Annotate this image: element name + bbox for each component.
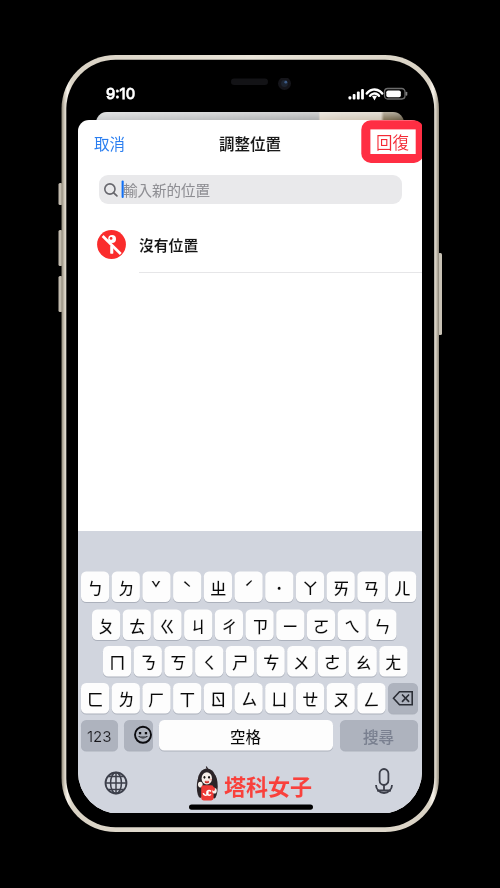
staticText: ㄠ [355, 650, 372, 674]
staticText: ㄋ [140, 650, 157, 674]
button[interactable]: 搜尋 [340, 720, 418, 751]
button[interactable]: ㄏ [142, 683, 170, 714]
button[interactable]: 回復 [370, 129, 415, 154]
staticText: ㄐ [190, 614, 207, 638]
button[interactable]: ㄦ [388, 572, 416, 603]
button[interactable]: ㄡ [327, 683, 355, 714]
staticText: ㄛ [313, 614, 330, 638]
staticText: 塔科女子 [224, 769, 313, 801]
button[interactable]: 空格 [159, 720, 333, 751]
button[interactable]: ㄔ [215, 610, 243, 641]
button[interactable]: ˋ [173, 572, 201, 603]
button[interactable]: ㄚ [296, 572, 324, 603]
button[interactable]: ㄈ [81, 683, 109, 714]
staticText: ㄧ [282, 614, 299, 638]
button[interactable]: ㄑ [195, 646, 223, 677]
staticText: ㄤ [385, 650, 402, 674]
staticText: ㄘ [263, 650, 280, 674]
staticText: ㄝ [302, 687, 319, 711]
button[interactable]: ㄌ [112, 683, 140, 714]
staticText: 取消 [94, 132, 125, 154]
staticText: ㄥ [363, 687, 380, 711]
button[interactable]: ㄒ [173, 683, 201, 714]
button[interactable]: ㄘ [257, 646, 285, 677]
button[interactable]: ㄟ [338, 610, 366, 641]
button[interactable]: ㄇ [103, 646, 131, 677]
staticText: ㄗ [252, 614, 269, 638]
button[interactable]: ㄖ [204, 683, 232, 714]
staticText: ㄅ [87, 576, 104, 600]
button[interactable]: ㄕ [226, 646, 254, 677]
staticText: ㄞ [333, 576, 350, 600]
button[interactable]: ㄆ [92, 610, 120, 641]
staticText: ㄩ [271, 687, 288, 711]
staticText: 空格 [230, 725, 262, 747]
staticText: 9:10 [106, 84, 136, 102]
staticText: ㄜ [324, 650, 341, 674]
button[interactable]: ㄧ [276, 610, 304, 641]
button[interactable]: ㄣ [368, 610, 396, 641]
button[interactable]: ㄛ [307, 610, 335, 641]
button[interactable]: ㄨ [287, 646, 315, 677]
staticText: 輸入新的位置 [123, 179, 210, 200]
staticText: ˙ [275, 576, 284, 600]
staticText: ㄒ [179, 687, 196, 711]
staticText: ㄓ [210, 576, 227, 600]
staticText: ㄎ [170, 650, 187, 674]
button[interactable]: ㄍ [153, 610, 181, 641]
staticText: ㄔ [221, 614, 238, 638]
staticText: ㄦ [394, 576, 411, 600]
button[interactable]: ㄊ [123, 610, 151, 641]
staticText: ㄢ [363, 576, 380, 600]
staticText: 回復 [376, 130, 409, 154]
staticText: ˊ [244, 576, 254, 600]
button[interactable]: ˊ [235, 572, 263, 603]
button[interactable]: ˇ [142, 572, 170, 603]
button[interactable]: ㄓ [204, 572, 232, 603]
button[interactable]: ㄙ [235, 683, 263, 714]
staticText: ˋ [182, 576, 192, 600]
button[interactable]: ㄎ [164, 646, 192, 677]
button[interactable]: 輸入新的位置 [99, 175, 402, 204]
staticText: ㄏ [148, 687, 165, 711]
staticText: 沒有位置 [139, 234, 199, 255]
staticText: ㄣ [374, 614, 391, 638]
button[interactable]: ㄠ [349, 646, 377, 677]
staticText: ㄑ [201, 650, 218, 674]
button[interactable]: ㄩ [265, 683, 293, 714]
staticText: 調整位置 [219, 132, 282, 154]
staticText: 123 [87, 727, 112, 745]
staticText: ㄌ [118, 687, 135, 711]
button[interactable]: ˙ [265, 572, 293, 603]
button[interactable]: 123 [81, 720, 118, 751]
button[interactable]: ㄋ [134, 646, 162, 677]
button[interactable]: ㄅ [81, 572, 109, 603]
button[interactable]: ㄗ [246, 610, 274, 641]
staticText: ㄕ [232, 650, 249, 674]
button[interactable]: No location [78, 216, 422, 272]
staticText: ㄍ [159, 614, 176, 638]
button[interactable]: ㄢ [357, 572, 385, 603]
other: No location [97, 230, 126, 259]
button[interactable]: ㄝ [296, 683, 324, 714]
staticText: ㄉ [118, 576, 135, 600]
staticText: ㄊ [129, 614, 146, 638]
staticText: ㄡ [333, 687, 350, 711]
staticText: ㄖ [210, 687, 227, 711]
staticText: ㄆ [98, 614, 115, 638]
staticText: ㄈ [87, 687, 104, 711]
button[interactable]: ㄜ [318, 646, 346, 677]
button[interactable]: ㄤ [379, 646, 407, 677]
staticText: ㄟ [344, 614, 361, 638]
button[interactable]: ㄞ [327, 572, 355, 603]
staticText: ㄙ [241, 687, 258, 711]
button[interactable]: ㄉ [112, 572, 140, 603]
button[interactable]: ㄐ [184, 610, 212, 641]
staticText: ˇ [151, 576, 161, 600]
staticText: ㄨ [293, 650, 310, 674]
staticText: ㄇ [109, 650, 126, 674]
staticText: 搜尋 [363, 725, 395, 747]
staticText: ㄚ [302, 576, 319, 600]
button[interactable]: 取消 [94, 131, 125, 155]
button[interactable]: ㄥ [357, 683, 385, 714]
